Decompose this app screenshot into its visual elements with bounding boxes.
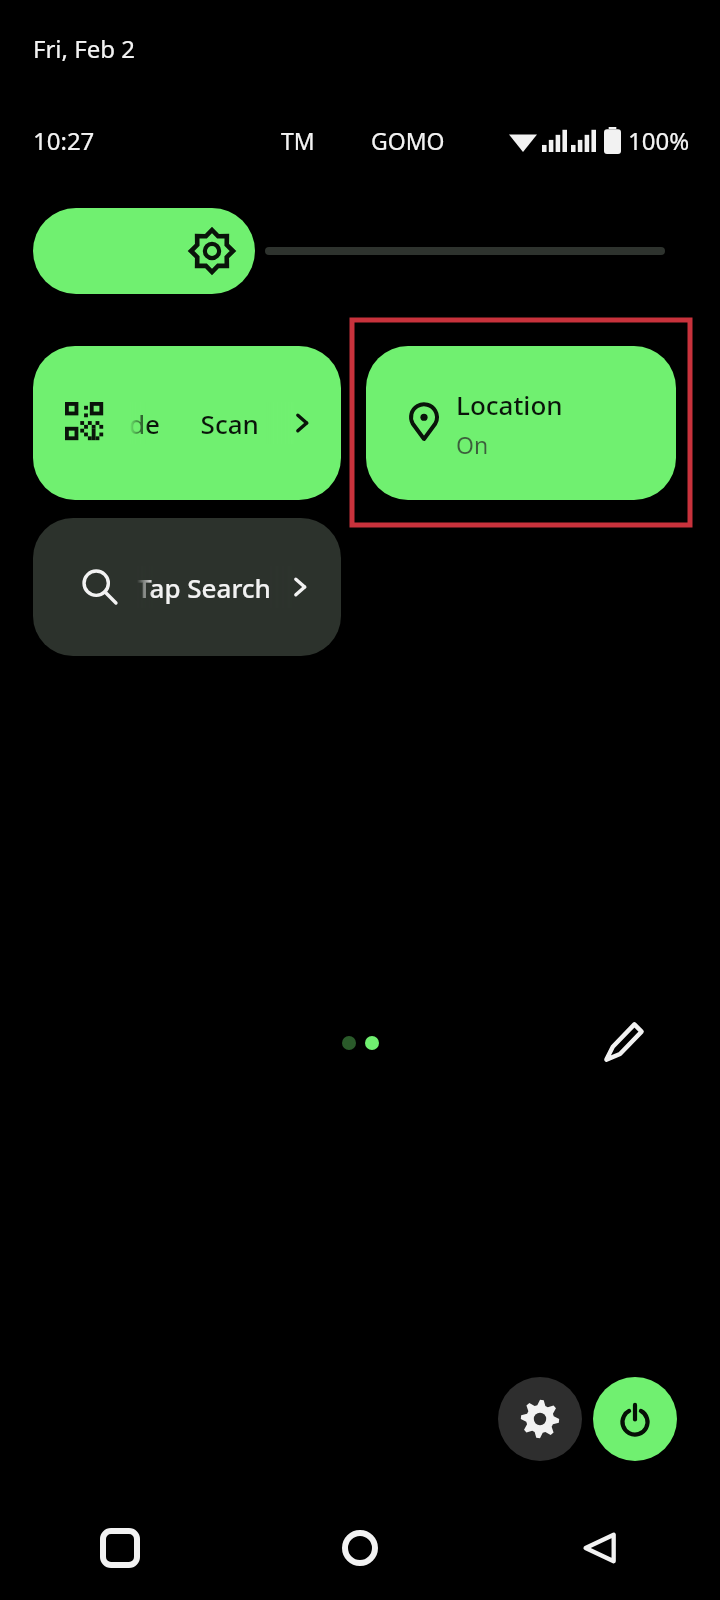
button[interactable]: Power — [593, 1377, 677, 1461]
button[interactable]: Tap Search — [33, 518, 341, 656]
staticText: GOMO — [371, 125, 445, 156]
staticText: Tap Search — [137, 570, 271, 605]
staticText: Fri, Feb 2 — [33, 32, 135, 65]
staticText: Location — [456, 387, 563, 422]
staticText: On — [456, 429, 489, 460]
staticText: 10:27 — [33, 124, 95, 157]
button[interactable]: Recents — [0, 1496, 240, 1600]
button[interactable]: Settings — [498, 1377, 582, 1461]
staticText: de Scan — [129, 406, 259, 441]
button[interactable]: Back — [480, 1496, 720, 1600]
button[interactable]: Edit — [597, 1015, 651, 1069]
button[interactable]: Brightness — [33, 208, 255, 294]
button[interactable]: de Scan — [33, 346, 341, 500]
button[interactable]: Home — [240, 1496, 480, 1600]
staticText: TM — [281, 125, 315, 156]
button[interactable]: Location — [366, 346, 676, 500]
staticText: 100% — [628, 124, 690, 157]
